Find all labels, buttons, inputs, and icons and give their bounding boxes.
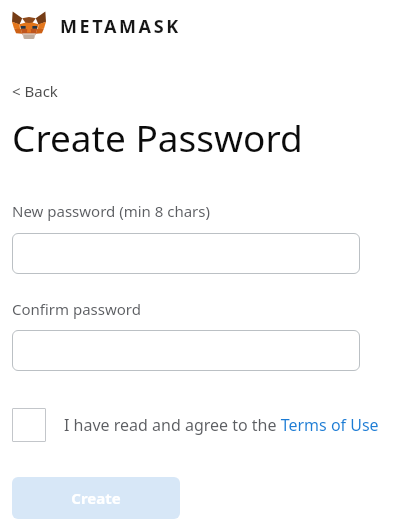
staticText: Create Password — [12, 112, 303, 162]
button[interactable]: METAMASK — [12, 11, 181, 41]
button[interactable]: Agree to Terms of Use checkbox — [12, 408, 46, 442]
staticText: Create — [71, 488, 121, 508]
staticText: I have read and agree to the Terms of Us… — [64, 414, 379, 436]
button[interactable]: I have read and agree to the Terms of Us… — [64, 414, 379, 436]
button[interactable]: New password input — [12, 233, 360, 274]
staticText: METAMASK — [60, 14, 181, 39]
staticText: < Back — [12, 81, 58, 101]
button[interactable]: Create — [12, 477, 180, 519]
staticText: Confirm password — [12, 299, 141, 319]
button[interactable]: < Back — [12, 81, 58, 101]
staticText: New password (min 8 chars) — [12, 201, 210, 221]
button[interactable]: Confirm password input — [12, 330, 360, 371]
